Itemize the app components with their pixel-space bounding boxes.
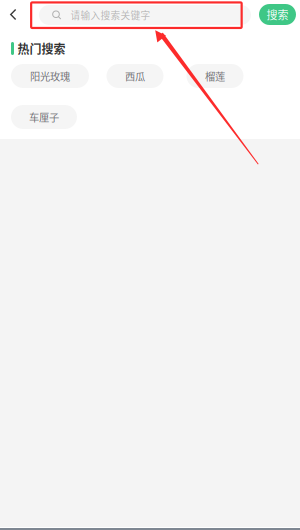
staticText: 车厘子 — [29, 110, 59, 124]
button[interactable]: 榴莲 — [186, 64, 243, 88]
staticText: 阳光玫瑰 — [30, 69, 70, 83]
button[interactable]: Back — [0, 1, 26, 27]
staticText: 搜索 — [266, 6, 288, 22]
button[interactable]: 阳光玫瑰 — [11, 64, 89, 88]
staticText: 西瓜 — [125, 69, 145, 83]
button[interactable]: 西瓜 — [106, 64, 163, 88]
button[interactable]: 搜索 — [259, 4, 296, 25]
button[interactable]: 车厘子 — [11, 105, 77, 129]
button[interactable]: 请输入搜索关键字 — [39, 5, 251, 25]
staticText: 请输入搜索关键字 — [70, 8, 150, 22]
staticText: 热门搜索 — [17, 40, 65, 57]
staticText: 榴莲 — [205, 69, 225, 83]
